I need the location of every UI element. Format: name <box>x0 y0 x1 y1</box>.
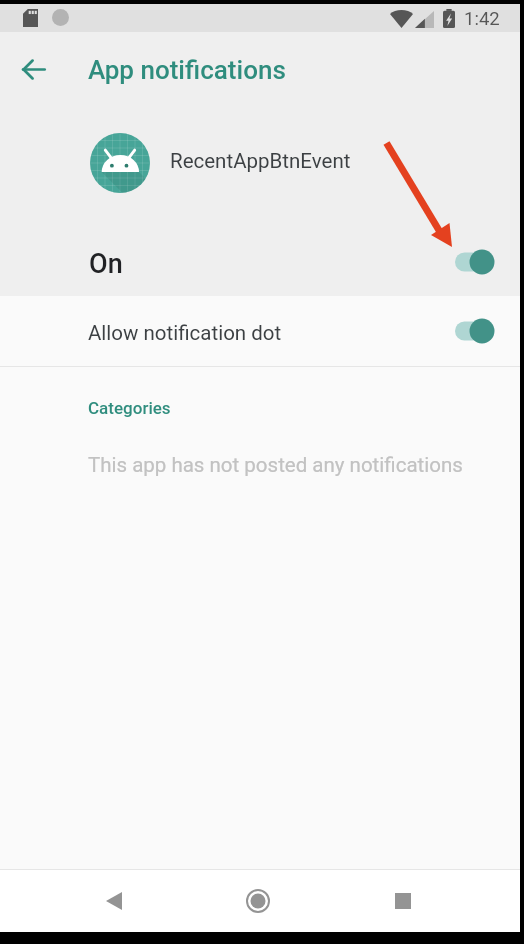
button[interactable]: Navigate up <box>9 45 57 93</box>
button[interactable]: Recent apps <box>363 870 443 932</box>
button[interactable]: Allow notification dot <box>0 297 520 366</box>
staticText: This app has not posted any notification… <box>88 453 463 477</box>
button[interactable]: Back <box>74 870 154 932</box>
button[interactable]: Toggle on <box>455 313 495 349</box>
staticText: Categories <box>88 398 171 418</box>
button[interactable]: On <box>0 228 520 296</box>
staticText: RecentAppBtnEvent <box>170 149 351 173</box>
other: SD card <box>23 9 38 27</box>
staticText: Allow notification dot <box>88 321 282 345</box>
staticText: App notifications <box>88 55 286 85</box>
staticText: 1:42 <box>464 8 500 30</box>
button[interactable]: Toggle on <box>455 244 495 280</box>
staticText: On <box>89 248 123 280</box>
button[interactable]: RecentAppBtnEvent <box>0 128 520 206</box>
button[interactable]: Home <box>218 870 298 932</box>
